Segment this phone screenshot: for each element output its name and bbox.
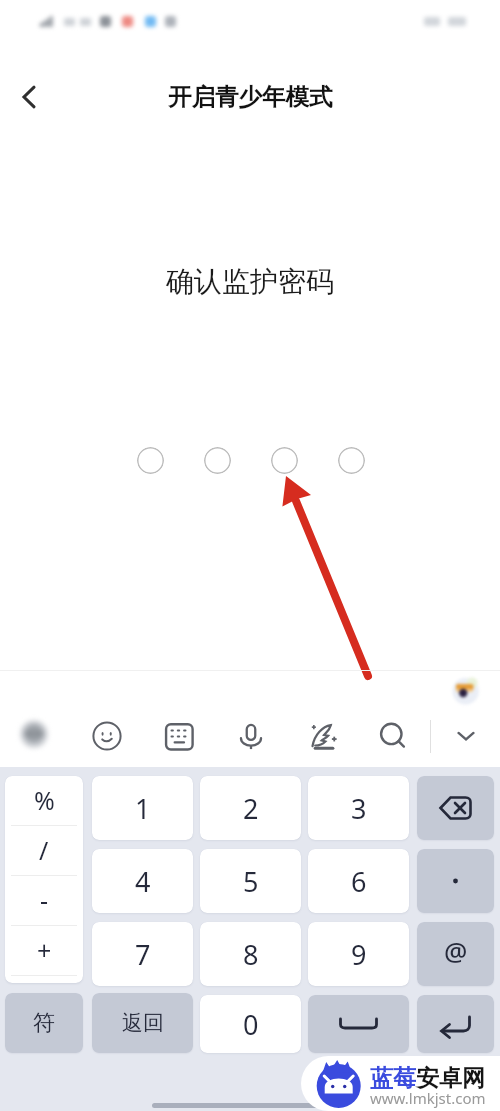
button[interactable]: 0 [200, 995, 301, 1053]
button[interactable]: 5 [200, 849, 301, 913]
staticText: 4 [135, 863, 151, 900]
staticText: 符 [33, 1009, 55, 1037]
staticText: 3 [351, 790, 367, 827]
button[interactable]: @ [417, 922, 494, 986]
staticText: 确认监护密码 [0, 264, 500, 299]
button[interactable]: Handwriting [305, 719, 339, 753]
staticText: @ [444, 933, 468, 968]
button[interactable]: 返回 [92, 993, 193, 1053]
staticText: % [34, 783, 55, 817]
button[interactable]: - [5, 876, 83, 926]
staticText: 返回 [122, 1010, 164, 1036]
button[interactable]: 8 [200, 922, 301, 986]
button[interactable]: 7 [92, 922, 193, 986]
button[interactable]: 1 [92, 776, 193, 840]
staticText: www.lmkjst.com [370, 1088, 486, 1108]
button[interactable]: Enter [417, 995, 494, 1053]
button[interactable]: Voice input [234, 719, 268, 753]
button[interactable]: Back [1, 69, 57, 125]
staticText: - [40, 883, 49, 917]
staticText: 安卓网 [416, 1064, 485, 1093]
button[interactable]: Backspace [417, 776, 494, 840]
button[interactable]: Emoji [90, 719, 124, 753]
button[interactable]: Sticker [450, 675, 480, 705]
button[interactable]: 9 [308, 922, 409, 986]
button[interactable]: / [5, 826, 83, 876]
button[interactable]: Keyboard [162, 719, 196, 753]
staticText: 0 [243, 1006, 259, 1043]
button[interactable]: 3 [308, 776, 409, 840]
button[interactable]: 6 [308, 849, 409, 913]
staticText: 7 [135, 936, 151, 973]
button[interactable]: Space [308, 995, 409, 1053]
button[interactable]: App logo [17, 716, 51, 750]
button[interactable]: Search [376, 719, 410, 753]
staticText: 开启青少年模式 [168, 82, 333, 112]
staticText: 1 [135, 790, 151, 827]
staticText: + [37, 933, 52, 967]
button[interactable]: 符 [5, 993, 83, 1053]
staticText: 蓝莓 [370, 1064, 416, 1093]
staticText: 9 [351, 936, 367, 973]
staticText: / [39, 833, 49, 867]
button[interactable]: % [5, 776, 83, 826]
button[interactable]: 4 [92, 849, 193, 913]
staticText: 2 [243, 790, 259, 827]
staticText: 8 [243, 936, 259, 973]
button[interactable]: Period [417, 849, 494, 913]
button[interactable]: Hide keyboard [449, 719, 483, 753]
button[interactable]: 2 [200, 776, 301, 840]
staticText: 6 [351, 863, 367, 900]
staticText: 5 [243, 863, 259, 900]
button[interactable]: + [5, 926, 83, 976]
